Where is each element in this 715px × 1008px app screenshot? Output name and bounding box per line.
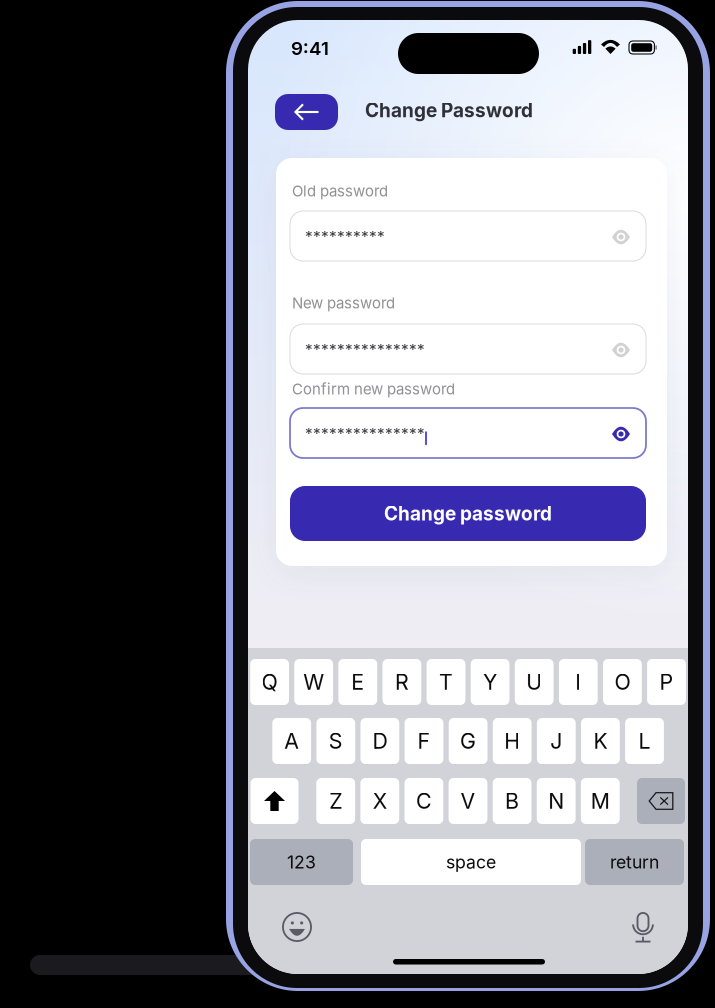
staticText: R [395,669,409,695]
button[interactable]: space [361,839,581,885]
button[interactable]: J [537,718,576,764]
staticText: *************** [305,341,425,360]
button[interactable]: I [559,659,598,705]
button[interactable]: O [603,659,642,705]
staticText: E [351,669,364,695]
staticText: T [439,669,453,695]
staticText: G [460,728,476,754]
staticText: L [638,728,650,754]
button[interactable]: Change password [290,486,646,541]
button[interactable]: Show password [600,218,642,255]
staticText: U [526,669,542,695]
staticText: X [373,788,387,814]
button[interactable]: L [625,718,664,764]
button[interactable]: G [449,718,487,764]
button[interactable]: M [581,778,620,824]
staticText: N [548,788,564,814]
button[interactable]: T [427,659,465,705]
staticText: O [614,669,630,695]
button[interactable]: A [272,718,311,764]
button[interactable]: return [585,839,684,885]
staticText: B [505,788,519,814]
button[interactable]: Z [316,778,355,824]
button[interactable]: Back [275,94,338,130]
button[interactable]: 123 [250,839,353,885]
staticText: Old password [292,182,388,200]
button[interactable]: H [493,718,532,764]
button[interactable]: Show password [600,415,642,452]
staticText: C [416,788,432,814]
staticText: 123 [287,851,316,873]
staticText: ********** [305,228,385,247]
staticText: A [284,728,299,754]
staticText: M [591,788,610,814]
staticText: 9:41 [291,37,329,60]
staticText: D [372,728,387,754]
staticText: S [329,728,343,754]
button[interactable]: V [449,778,487,824]
button[interactable]: Show password [600,331,642,368]
button[interactable]: X [360,778,399,824]
staticText: H [504,728,520,754]
staticText: *************** [305,425,425,444]
button[interactable]: N [537,778,576,824]
staticText: P [659,669,673,695]
staticText: Change Password [365,99,533,122]
button[interactable]: K [581,718,620,764]
button[interactable]: R [382,659,421,705]
staticText: New password [292,294,395,312]
staticText: K [593,728,607,754]
staticText: Change password [384,502,552,525]
button[interactable]: Q [250,659,289,705]
button[interactable]: Delete [637,778,685,824]
staticText: W [303,669,324,695]
staticText: V [460,788,475,814]
button[interactable]: B [493,778,531,824]
staticText: Y [483,669,497,695]
button[interactable]: C [404,778,443,824]
button[interactable]: Dictate [624,904,662,951]
button[interactable]: D [360,718,399,764]
button[interactable]: Emoji keyboard [274,904,320,950]
staticText: Confirm new password [292,380,455,398]
staticText: J [550,728,562,754]
staticText: Q [262,669,278,695]
button[interactable]: E [338,659,377,705]
staticText: Z [329,788,342,814]
button[interactable]: Y [471,659,509,705]
staticText: F [417,728,430,754]
button[interactable]: S [316,718,355,764]
staticText: I [575,669,581,695]
button[interactable]: P [647,659,686,705]
button[interactable]: Shift [250,778,298,824]
staticText: space [446,851,496,873]
button[interactable]: U [515,659,554,705]
button[interactable]: W [294,659,333,705]
button[interactable]: F [405,718,443,764]
staticText: return [610,851,659,873]
